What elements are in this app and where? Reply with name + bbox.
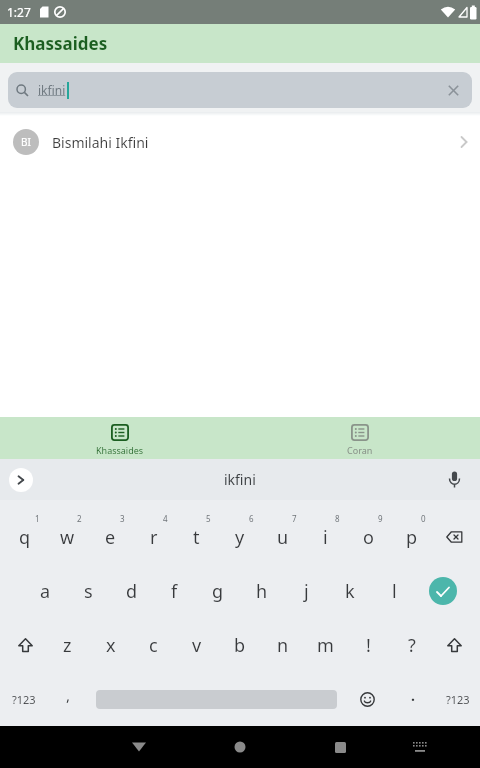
button[interactable]: Coran <box>240 417 480 459</box>
staticText: Khassaides <box>13 32 108 55</box>
staticText: ikfini <box>224 470 256 489</box>
button[interactable]: ?123 <box>0 672 48 726</box>
staticText: u <box>277 525 289 550</box>
staticText: 4 <box>163 513 168 524</box>
staticText: Khassaides <box>96 444 144 456</box>
staticText: q <box>19 525 31 550</box>
staticText: f <box>171 579 178 604</box>
staticText: c <box>149 633 158 658</box>
button[interactable]: p <box>390 510 433 564</box>
button[interactable]: c <box>132 618 175 672</box>
button[interactable]: e <box>89 510 132 564</box>
staticText: t <box>193 525 200 550</box>
staticText: p <box>406 525 418 550</box>
button[interactable]: b <box>218 618 261 672</box>
staticText: 8 <box>335 513 340 524</box>
staticText: 3 <box>120 513 125 524</box>
staticText: ?123 <box>446 692 470 707</box>
staticText: y <box>235 525 245 550</box>
staticText: m <box>317 633 334 658</box>
button[interactable]: l <box>372 564 416 618</box>
staticText: 0 <box>421 513 426 524</box>
button[interactable]: o <box>347 510 390 564</box>
button[interactable] <box>4 618 46 672</box>
button[interactable]: m <box>304 618 347 672</box>
staticText: d <box>126 579 138 604</box>
staticText: 1:27 <box>7 4 31 20</box>
button[interactable]: BI <box>0 116 480 168</box>
staticText: ikfini <box>38 82 66 98</box>
staticText: r <box>150 525 158 550</box>
button[interactable] <box>345 672 390 726</box>
staticText: o <box>363 525 374 550</box>
button[interactable]: f <box>153 564 196 618</box>
button[interactable] <box>416 564 470 618</box>
button[interactable]: q <box>4 510 46 564</box>
button[interactable] <box>433 618 476 672</box>
button[interactable]: a <box>24 564 67 618</box>
button[interactable] <box>226 733 254 761</box>
button[interactable]: r <box>132 510 175 564</box>
button[interactable]: u <box>261 510 304 564</box>
staticText: ! <box>366 633 371 658</box>
staticText: k <box>345 579 355 604</box>
button[interactable]: ? <box>390 618 433 672</box>
staticText: l <box>392 579 397 604</box>
staticText: a <box>40 579 51 604</box>
button[interactable] <box>448 85 459 96</box>
button[interactable] <box>406 733 434 761</box>
button[interactable] <box>125 733 153 761</box>
staticText: w <box>60 525 75 550</box>
button[interactable]: h <box>240 564 284 618</box>
staticText: , <box>66 685 71 705</box>
button[interactable]: y <box>218 510 261 564</box>
button[interactable]: ?123 <box>435 672 480 726</box>
button[interactable]: i <box>304 510 347 564</box>
button[interactable]: Khassaides <box>0 417 240 459</box>
staticText: Bismilahi Ikfini <box>52 133 149 152</box>
staticText: v <box>192 633 202 658</box>
button[interactable]: k <box>328 564 372 618</box>
button[interactable] <box>433 510 476 564</box>
staticText: z <box>63 633 72 658</box>
button[interactable]: t <box>175 510 218 564</box>
staticText: x <box>106 633 116 658</box>
button[interactable]: d <box>110 564 153 618</box>
staticText: 1 <box>35 513 40 524</box>
button[interactable] <box>448 471 461 489</box>
button[interactable]: ikfini <box>8 72 472 108</box>
staticText: ?123 <box>12 692 36 707</box>
button[interactable]: , <box>48 672 88 726</box>
staticText: n <box>277 633 289 658</box>
staticText: 6 <box>249 513 254 524</box>
button[interactable]: j <box>284 564 328 618</box>
button[interactable]: · <box>390 672 435 726</box>
staticText: · <box>411 690 415 709</box>
staticText: b <box>234 633 246 658</box>
button[interactable]: ! <box>347 618 390 672</box>
button[interactable]: s <box>67 564 110 618</box>
staticText: 5 <box>206 513 211 524</box>
staticText: e <box>105 525 116 550</box>
staticText: j <box>304 579 309 604</box>
staticText: BI <box>21 135 31 149</box>
button[interactable] <box>326 733 354 761</box>
button[interactable]: z <box>46 618 89 672</box>
staticText: 7 <box>292 513 297 524</box>
staticText: ? <box>408 633 416 658</box>
button[interactable]: w <box>46 510 89 564</box>
button[interactable]: n <box>261 618 304 672</box>
button[interactable]: ikfini <box>224 470 256 489</box>
staticText: h <box>256 579 268 604</box>
staticText: s <box>84 579 93 604</box>
button[interactable] <box>9 468 33 492</box>
staticText: Coran <box>347 444 373 456</box>
staticText: g <box>212 579 224 604</box>
button[interactable]: g <box>196 564 240 618</box>
staticText: i <box>323 525 328 550</box>
button[interactable]: x <box>89 618 132 672</box>
button[interactable]: v <box>175 618 218 672</box>
staticText: 2 <box>77 513 82 524</box>
staticText: 9 <box>378 513 383 524</box>
